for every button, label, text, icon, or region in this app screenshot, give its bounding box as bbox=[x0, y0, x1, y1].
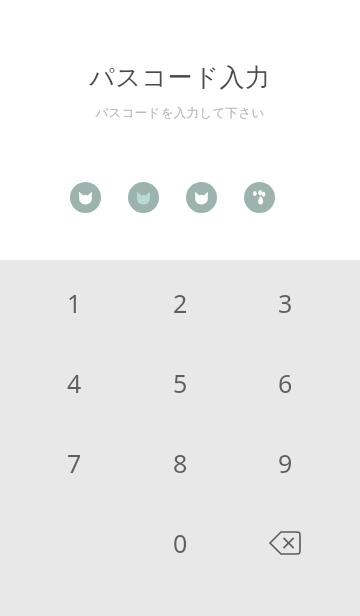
button[interactable]: 1 bbox=[26, 266, 122, 340]
button[interactable]: 2 bbox=[132, 266, 228, 340]
staticText: 8 bbox=[173, 446, 188, 480]
staticText: 9 bbox=[278, 446, 293, 480]
staticText: 0 bbox=[173, 526, 188, 560]
button[interactable]: 9 bbox=[237, 426, 333, 500]
staticText: 2 bbox=[173, 286, 188, 320]
button[interactable]: 7 bbox=[26, 426, 122, 500]
button[interactable]: 6 bbox=[237, 346, 333, 420]
staticText: 1 bbox=[67, 286, 82, 320]
button[interactable]: 3 bbox=[237, 266, 333, 340]
staticText: 3 bbox=[278, 286, 293, 320]
staticText: パスコード入力 bbox=[0, 62, 360, 93]
staticText: 4 bbox=[67, 366, 82, 400]
staticText: 6 bbox=[278, 366, 293, 400]
staticText: 7 bbox=[67, 446, 82, 480]
button[interactable]: 4 bbox=[26, 346, 122, 420]
button[interactable]: 0 bbox=[132, 506, 228, 580]
button[interactable]: Delete bbox=[237, 506, 333, 580]
button[interactable]: 5 bbox=[132, 346, 228, 420]
staticText: 5 bbox=[173, 366, 188, 400]
staticText: パスコードを入力して下さい bbox=[0, 105, 360, 121]
button[interactable]: 8 bbox=[132, 426, 228, 500]
